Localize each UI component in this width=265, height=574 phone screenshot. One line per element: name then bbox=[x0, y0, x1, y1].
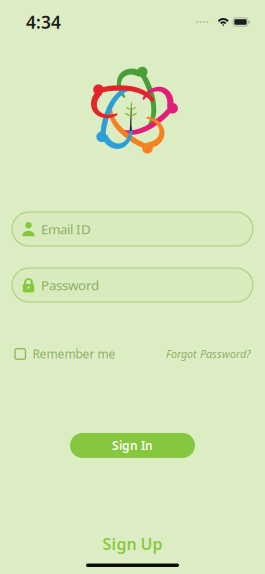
staticText: 4:34 bbox=[26, 10, 61, 33]
button[interactable]: Forgot Password? bbox=[166, 347, 251, 361]
staticText: Sign In bbox=[112, 437, 153, 453]
staticText: Sign Up bbox=[102, 533, 162, 554]
button[interactable]: Sign In bbox=[70, 433, 195, 458]
staticText: Forgot Password? bbox=[166, 347, 251, 361]
staticText: Password bbox=[41, 276, 99, 294]
staticText: Email ID bbox=[41, 220, 91, 238]
button[interactable]: Sign Up bbox=[102, 533, 162, 554]
button[interactable]: Remember me bbox=[15, 346, 115, 362]
staticText: Remember me bbox=[32, 346, 115, 362]
